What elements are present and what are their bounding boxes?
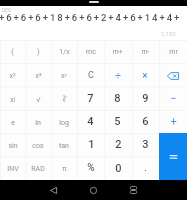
staticText: INV — [7, 165, 19, 173]
button[interactable]: ÷ — [104, 64, 131, 87]
button[interactable]: + — [159, 110, 187, 133]
button[interactable]: m+ — [104, 40, 131, 64]
staticText: ) — [37, 48, 40, 56]
staticText: x! — [10, 96, 16, 104]
button[interactable]: π — [51, 157, 77, 180]
button[interactable]: mc — [77, 40, 104, 64]
staticText: ∛ — [62, 96, 67, 104]
button[interactable]: 1/x — [51, 40, 77, 64]
staticText: 5 — [114, 115, 121, 128]
button[interactable]: Recents — [125, 185, 141, 195]
staticText: cos — [32, 142, 44, 150]
button[interactable]: x³ — [25, 64, 51, 88]
staticText: m- — [141, 48, 150, 56]
staticText: × — [142, 70, 148, 82]
staticText: e — [11, 119, 15, 127]
button[interactable]: cos — [25, 134, 51, 157]
staticText: ( — [11, 48, 14, 56]
staticText: log — [59, 119, 69, 127]
staticText: +6+6+6+18+6+6+2+4+6+14+4+ — [0, 12, 182, 23]
button[interactable]: ln — [25, 111, 51, 134]
staticText: 6 — [142, 115, 149, 128]
button[interactable]: 3 — [132, 133, 159, 156]
staticText: 1,192 — [161, 30, 176, 37]
button[interactable]: mr — [159, 40, 187, 64]
staticText: 8 — [114, 92, 121, 105]
button[interactable]: 4 — [77, 110, 104, 133]
staticText: 3 — [142, 138, 149, 151]
staticText: C — [88, 70, 94, 81]
button[interactable]: log — [51, 111, 77, 134]
button[interactable]: C — [77, 64, 104, 87]
staticText: ÷ — [115, 70, 121, 82]
button[interactable]: 1 — [77, 133, 105, 156]
button[interactable]: tan — [51, 134, 77, 157]
button[interactable]: − — [159, 87, 187, 110]
button[interactable]: 8 — [104, 87, 131, 110]
staticText: RAD — [31, 165, 45, 173]
button[interactable]: . — [132, 156, 159, 180]
staticText: − — [170, 92, 177, 105]
button[interactable]: Home — [85, 185, 101, 195]
staticText: . — [144, 161, 147, 174]
staticText: 2 — [115, 138, 122, 151]
staticText: 4 — [87, 115, 94, 128]
button[interactable]: e — [0, 111, 25, 134]
staticText: tan — [59, 142, 69, 150]
button[interactable]: ∛ — [51, 88, 77, 111]
button[interactable]: RAD — [25, 157, 51, 180]
staticText: x³ — [35, 72, 42, 80]
staticText: ln — [35, 119, 41, 127]
button[interactable] — [159, 133, 187, 180]
staticText: DEG — [2, 7, 12, 13]
staticText: mr — [169, 48, 178, 56]
button[interactable]: Backspace — [159, 64, 187, 87]
staticText: 1/x — [59, 48, 70, 56]
staticText: mc — [86, 48, 96, 56]
button[interactable]: × — [131, 64, 159, 87]
button[interactable]: % — [77, 156, 105, 180]
button[interactable]: sin — [0, 134, 25, 157]
button[interactable]: 0 — [105, 156, 132, 180]
button[interactable]: 2 — [105, 133, 132, 156]
button[interactable]: ( — [0, 40, 25, 64]
staticText: 1 — [88, 138, 95, 151]
staticText: √ — [36, 96, 41, 104]
button[interactable]: ) — [25, 40, 51, 64]
button[interactable]: x! — [0, 88, 25, 111]
button[interactable]: x² — [0, 64, 25, 88]
staticText: + — [170, 115, 177, 128]
button[interactable]: √ — [25, 88, 51, 111]
staticText: xʸ — [61, 71, 67, 81]
button[interactable]: xʸ — [51, 64, 77, 88]
button[interactable]: 5 — [104, 110, 131, 133]
staticText: 7 — [87, 92, 94, 105]
staticText: % — [87, 162, 95, 174]
staticText: π — [62, 165, 67, 173]
button[interactable]: 6 — [131, 110, 159, 133]
staticText: m+ — [112, 48, 123, 56]
button[interactable]: Back — [45, 185, 61, 195]
staticText: 9 — [142, 92, 149, 105]
staticText: x² — [9, 72, 16, 80]
button[interactable]: m- — [131, 40, 159, 64]
staticText: 0 — [115, 162, 122, 175]
button[interactable]: 7 — [77, 87, 104, 110]
button[interactable]: INV — [0, 157, 25, 180]
button[interactable]: 9 — [131, 87, 159, 110]
staticText: sin — [8, 142, 18, 150]
